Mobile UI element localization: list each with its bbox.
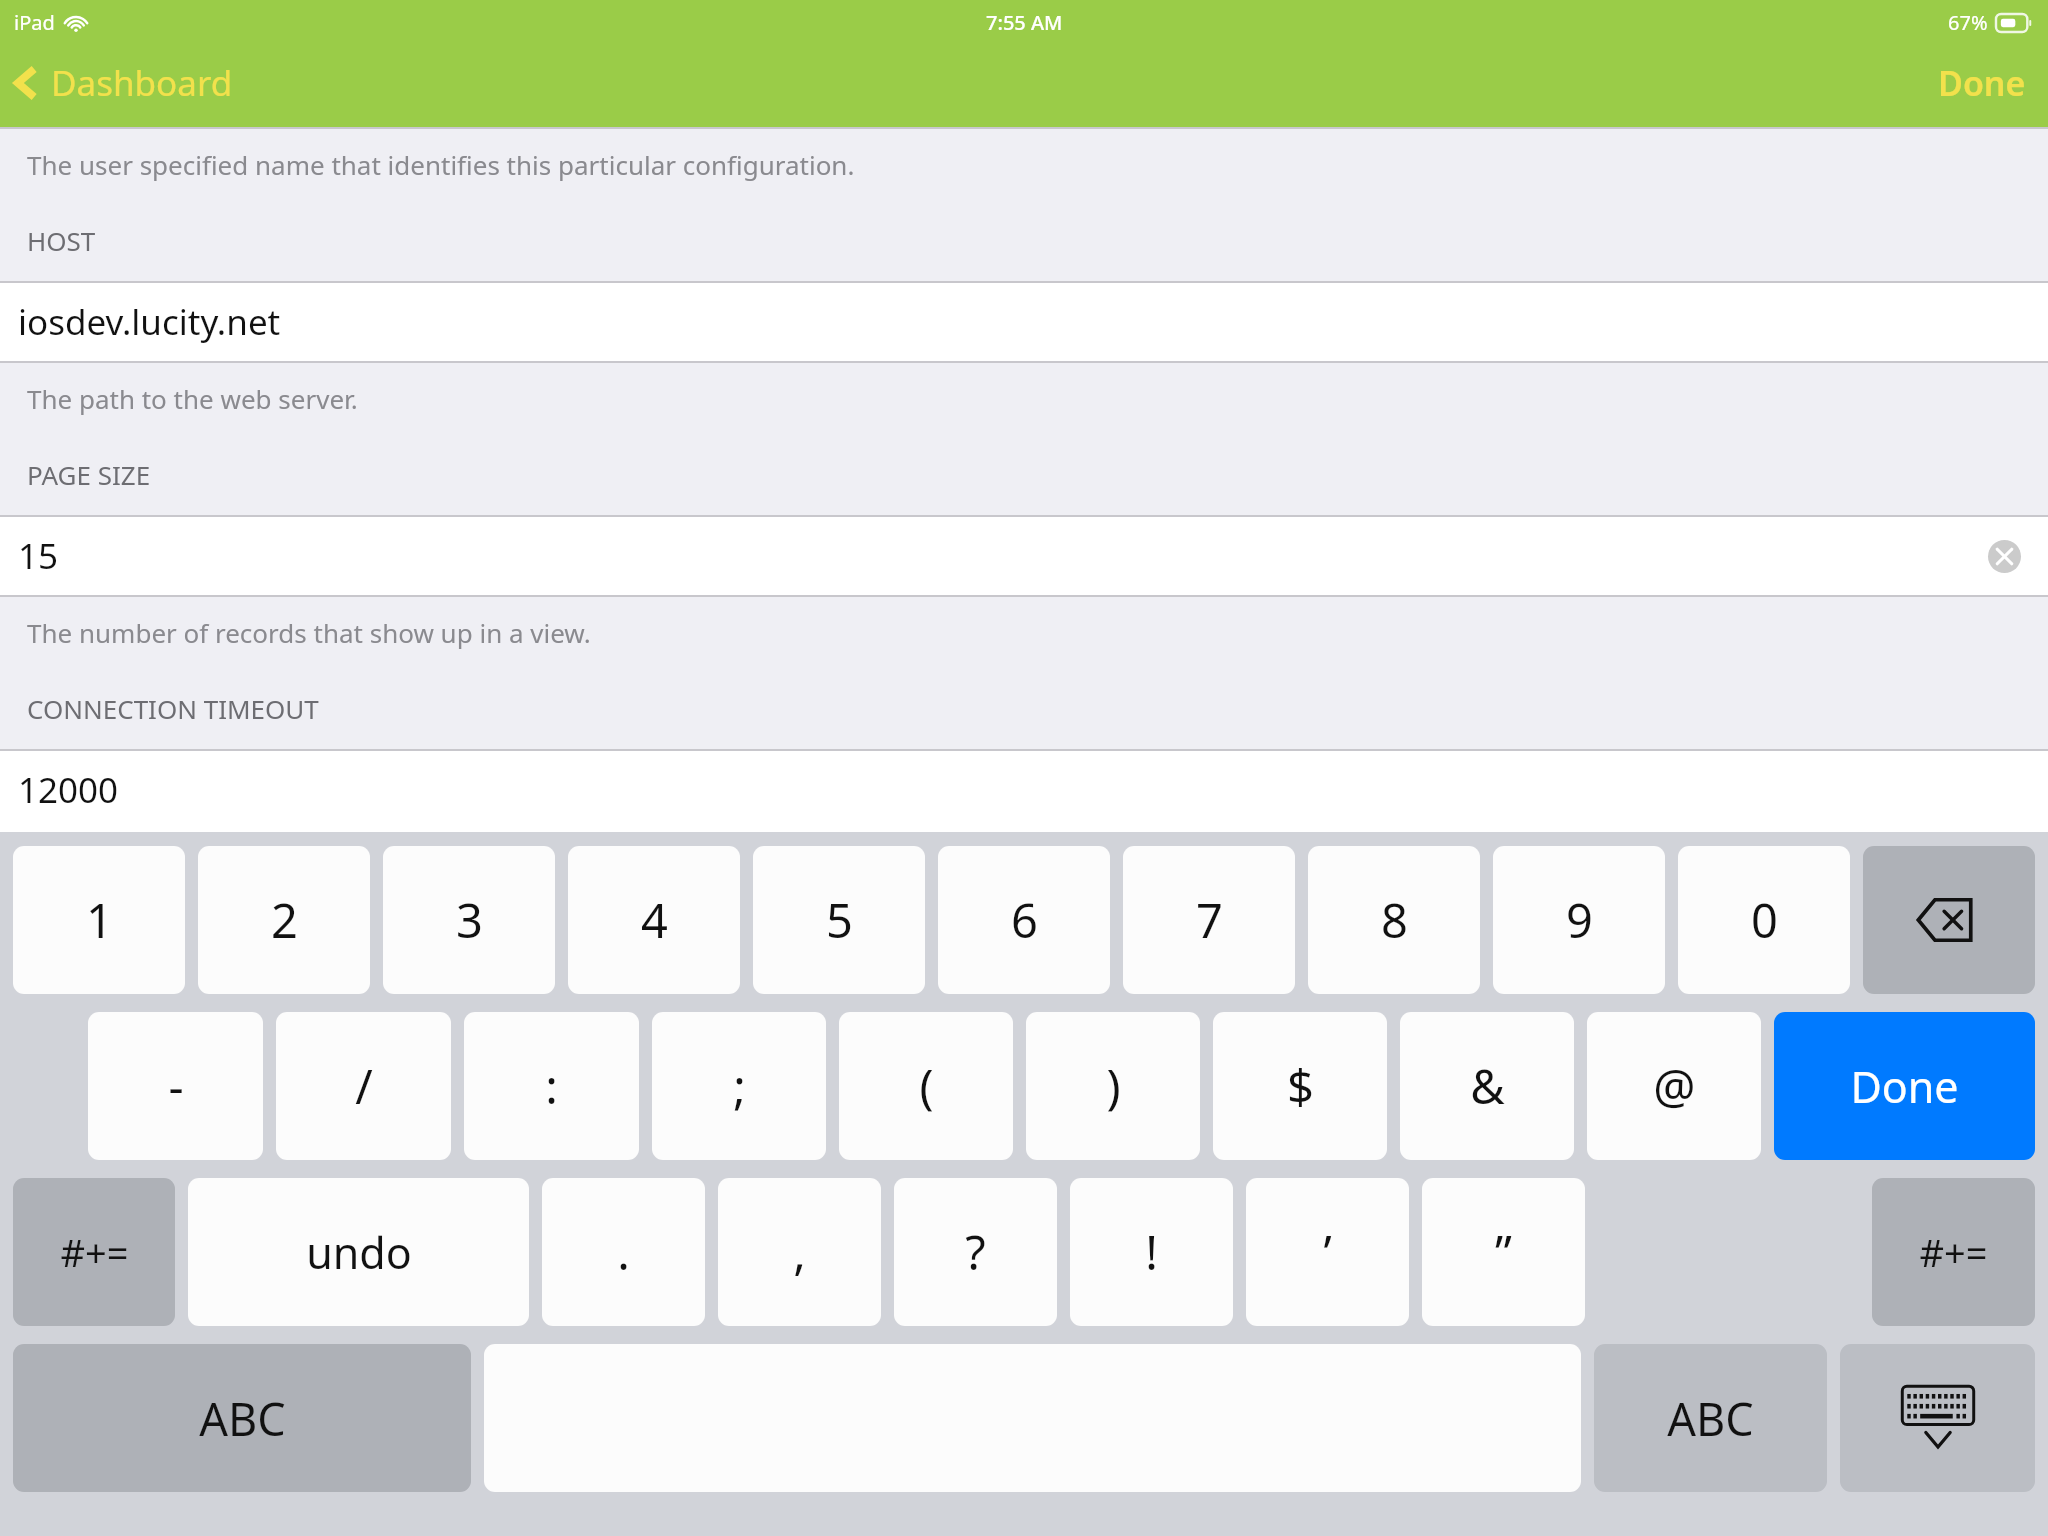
staticText: ” [1495,1220,1512,1284]
button[interactable]: & [1400,1012,1574,1160]
staticText: Done [1938,60,2026,106]
staticText: The user specified name that identifies … [27,147,855,182]
button[interactable]: 7 [1123,846,1295,994]
staticText: 5 [826,888,853,952]
staticText: 2 [271,888,298,952]
staticText: ’ [1323,1220,1332,1284]
staticText: ) [1106,1054,1121,1118]
staticText: #+= [1919,1226,1988,1278]
staticText: $ [1287,1054,1314,1118]
staticText: 1 [86,888,113,952]
button[interactable]: - [88,1012,263,1160]
button[interactable]: Hide keyboard [1840,1344,2035,1492]
staticText: 6 [1011,888,1038,952]
staticText: ! [1145,1220,1158,1284]
button[interactable]: undo [188,1178,529,1326]
staticText: The path to the web server. [27,381,358,416]
button[interactable]: iosdev.lucity.net [0,283,2048,361]
staticText: & [1470,1054,1505,1118]
staticText: 3 [456,888,483,952]
staticText: 7:55 AM [986,9,1063,36]
staticText: The number of records that show up in a … [27,615,591,650]
button[interactable]: 6 [938,846,1110,994]
button[interactable]: @ [1587,1012,1761,1160]
button[interactable]: 8 [1308,846,1480,994]
button[interactable]: 3 [383,846,555,994]
button[interactable]: ! [1070,1178,1233,1326]
staticText: #+= [60,1226,129,1278]
staticText: : [545,1054,558,1118]
button[interactable]: ’ [1246,1178,1409,1326]
button[interactable]: $ [1213,1012,1387,1160]
staticText: ABC [1667,1388,1754,1449]
button[interactable]: ABC [13,1344,471,1492]
button[interactable]: Backspace [1863,846,2035,994]
button[interactable]: . [542,1178,705,1326]
staticText: 7 [1196,888,1223,952]
button[interactable]: 12000 [0,751,2048,829]
staticText: Done [1850,1057,1959,1116]
button[interactable]: #+= [13,1178,175,1326]
button[interactable]: ; [652,1012,826,1160]
button[interactable]: : [464,1012,639,1160]
button[interactable]: 0 [1678,846,1850,994]
staticText: , [793,1220,806,1284]
staticText: 4 [641,888,668,952]
button[interactable]: 1 [13,846,185,994]
button[interactable]: Clear text [1982,534,2026,578]
staticText: @ [1653,1054,1696,1118]
button[interactable]: / [276,1012,451,1160]
button[interactable]: Done [1914,56,2048,116]
staticText: CONNECTION TIMEOUT [27,691,319,726]
button[interactable]: Done [1774,1012,2035,1160]
button[interactable]: ) [1026,1012,1200,1160]
button[interactable]: 2 [198,846,370,994]
staticText: 8 [1381,888,1408,952]
staticText: - [168,1054,184,1118]
button[interactable]: Dashboard [0,55,253,117]
staticText: ? [965,1220,986,1284]
staticText: 12000 [18,766,119,814]
button[interactable]: ” [1422,1178,1585,1326]
staticText: 15 [18,532,59,580]
staticText: iosdev.lucity.net [18,298,281,346]
staticText: 0 [1751,888,1778,952]
staticText: ( [919,1054,934,1118]
staticText: ABC [199,1388,286,1449]
button[interactable]: ? [894,1178,1057,1326]
staticText: 67% [1948,9,1988,36]
staticText: / [355,1054,373,1118]
staticText: Dashboard [51,59,233,107]
button[interactable]: ABC [1594,1344,1827,1492]
button[interactable]: 4 [568,846,740,994]
staticText: iPad [14,9,55,36]
staticText: . [617,1220,630,1284]
staticText: ; [733,1054,746,1118]
staticText: 9 [1566,888,1593,952]
button[interactable]: 9 [1493,846,1665,994]
staticText: PAGE SIZE [27,457,151,492]
button[interactable]: , [718,1178,881,1326]
staticText: HOST [27,223,96,258]
staticText: undo [306,1223,412,1282]
button[interactable]: #+= [1872,1178,2035,1326]
button[interactable]: 15 [0,517,2048,595]
button[interactable]: 5 [753,846,925,994]
button[interactable]: ( [839,1012,1013,1160]
